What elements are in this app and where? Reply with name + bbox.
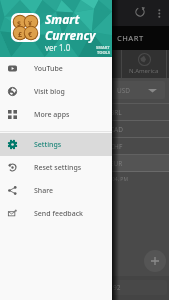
staticText: Visit blog: [34, 87, 65, 97]
staticText: £: [18, 30, 23, 40]
staticText: 92: [113, 283, 121, 292]
staticText: Send feedback: [34, 209, 83, 219]
button[interactable]: EUR: [0, 155, 169, 172]
staticText: €: [28, 30, 33, 40]
staticText: TOOLS: [97, 50, 110, 55]
button[interactable]: More apps: [0, 103, 112, 126]
staticText: USD: [117, 86, 131, 95]
button[interactable]: 92: [2, 280, 167, 295]
staticText: Settings: [34, 140, 62, 150]
button[interactable]: CHF: [0, 138, 169, 155]
button[interactable]: Share: [0, 179, 112, 202]
staticText: Smart: [45, 11, 80, 27]
staticText: EUR: [110, 159, 123, 168]
button[interactable]: Settings: [0, 133, 112, 156]
button[interactable]: CAD: [0, 121, 169, 138]
button[interactable]: Send feedback: [0, 202, 112, 225]
button[interactable]: More options: [151, 0, 167, 26]
staticText: 04, PM: [112, 176, 128, 183]
staticText: BRL: [110, 108, 122, 117]
staticText: ¥: [28, 19, 33, 29]
staticText: CHART: [117, 33, 144, 43]
staticText: Reset settings: [34, 163, 82, 173]
button[interactable]: Add: [144, 250, 166, 272]
staticText: CAD: [110, 125, 124, 134]
staticText: More apps: [34, 110, 70, 120]
button[interactable]: YouTube: [0, 57, 112, 80]
button[interactable]: [77, 50, 121, 78]
staticText: Share: [34, 186, 54, 196]
button[interactable]: Refresh: [130, 0, 149, 26]
button[interactable]: N.America: [122, 50, 166, 78]
staticText: SMART: [96, 45, 110, 50]
staticText: ver 1.0: [45, 42, 71, 53]
button[interactable]: USD: [4, 81, 165, 99]
staticText: YouTube: [34, 64, 63, 74]
staticText: CHF: [110, 142, 123, 151]
button[interactable]: BRL: [0, 104, 169, 121]
button[interactable]: Visit blog: [0, 80, 112, 103]
staticText: N.America: [129, 67, 159, 75]
staticText: Currency: [45, 27, 96, 43]
staticText: $: [17, 19, 22, 29]
button[interactable]: Reset settings: [0, 156, 112, 179]
